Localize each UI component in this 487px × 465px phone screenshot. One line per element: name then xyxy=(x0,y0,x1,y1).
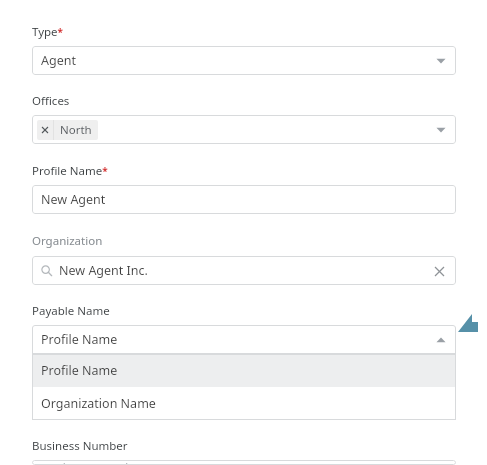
staticText: Profile Name xyxy=(41,362,118,379)
other: Close Payable Name dropdown xyxy=(435,336,447,344)
staticText: North xyxy=(60,122,92,138)
staticText: Business Number xyxy=(32,438,128,454)
other: Remove North xyxy=(37,120,53,140)
other: Open Offices dropdown xyxy=(435,126,447,134)
button[interactable]: New Agent Inc. xyxy=(32,256,456,285)
button[interactable]: Business Number xyxy=(32,460,456,465)
staticText: New Agent Inc. xyxy=(59,262,148,279)
button[interactable]: Remove North xyxy=(32,115,456,144)
button[interactable]: New Agent xyxy=(32,185,456,214)
button[interactable]: Profile Name xyxy=(32,325,456,354)
staticText: Organization xyxy=(32,233,103,249)
staticText: Profile Name* xyxy=(32,163,108,179)
other: Open Type dropdown xyxy=(435,57,447,65)
staticText: Organization Name xyxy=(41,395,156,412)
staticText: New Agent xyxy=(41,191,106,208)
staticText: Agent xyxy=(41,52,76,69)
button[interactable]: Remove North xyxy=(37,120,98,140)
staticText: Offices xyxy=(32,93,70,109)
staticText: Business Number xyxy=(41,460,145,465)
button[interactable]: Organization Name xyxy=(32,387,456,420)
button[interactable]: Profile Name xyxy=(32,354,456,387)
staticText: Profile Name xyxy=(41,331,118,348)
button[interactable]: Agent xyxy=(32,46,456,75)
staticText: Payable Name xyxy=(32,303,110,319)
button[interactable]: Clear organization xyxy=(432,264,446,278)
staticText: Type* xyxy=(32,24,64,40)
